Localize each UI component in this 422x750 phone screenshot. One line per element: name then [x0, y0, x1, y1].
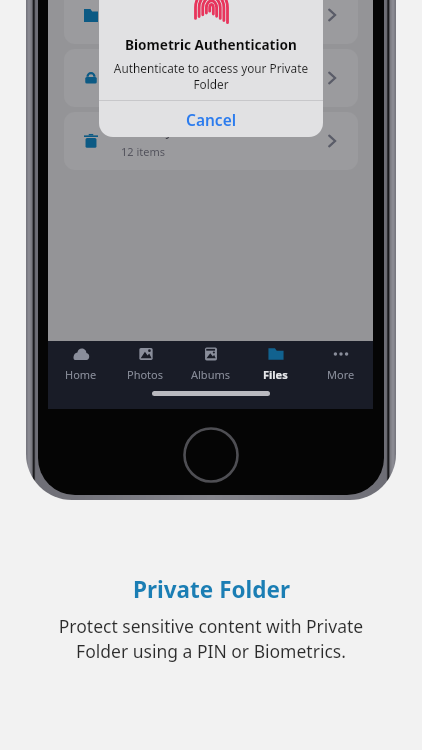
staticText: Private Folder [121, 60, 205, 77]
staticText: Files [263, 367, 288, 382]
staticText: Private Folder [133, 574, 290, 605]
staticText: Authenticate to access your Private Fold… [104, 60, 318, 92]
button[interactable]: Cancel [99, 101, 323, 137]
button[interactable]: Home [48, 343, 113, 385]
button[interactable]: Private Folder [64, 49, 358, 107]
staticText: More [327, 367, 355, 382]
staticText: Cancel [186, 109, 237, 130]
button[interactable]: Photos [113, 343, 178, 385]
button[interactable]: Recently Deleted [64, 112, 358, 170]
button[interactable]: Files [243, 343, 308, 385]
staticText: Photos [127, 367, 164, 382]
staticText: Albums [191, 367, 230, 382]
staticText: Protect sensitive content with Private F… [41, 614, 381, 663]
button[interactable]: More [308, 343, 373, 385]
button[interactable]: Documents [64, 0, 358, 44]
staticText: Recently Deleted [121, 123, 222, 140]
staticText: Home [65, 367, 97, 382]
button[interactable]: Albums [178, 343, 243, 385]
staticText: Biometric Authentication [125, 35, 297, 54]
staticText: 12 items [121, 144, 166, 159]
